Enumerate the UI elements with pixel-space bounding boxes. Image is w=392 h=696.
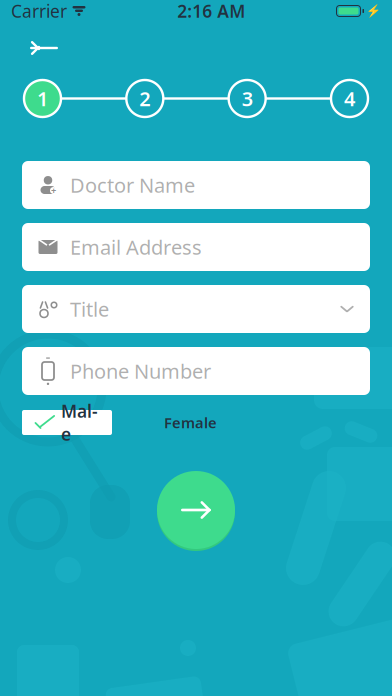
button[interactable]: Back [15, 30, 73, 66]
staticText: 2:16 AM [177, 0, 245, 22]
staticText: + [51, 184, 56, 197]
staticText: Title [70, 296, 109, 322]
staticText: Phone Number [70, 358, 211, 384]
staticText: Male [61, 399, 98, 445]
staticText: 1 [37, 85, 48, 112]
button[interactable]: Female [150, 410, 231, 435]
staticText: Carrier [11, 0, 67, 22]
button[interactable]: Phone Number [22, 347, 370, 395]
button[interactable]: + [22, 161, 370, 209]
staticText: 3 [242, 85, 253, 112]
button[interactable]: Email Address [22, 223, 370, 271]
staticText: 2 [139, 85, 150, 112]
staticText: Email Address [70, 234, 202, 260]
staticText: Female [164, 413, 217, 432]
staticText: Doctor Name [70, 172, 195, 198]
button[interactable]: Male [22, 410, 112, 435]
staticText: ⚡ [366, 4, 381, 18]
staticText: 4 [344, 85, 355, 112]
button[interactable]: Next [155, 469, 237, 551]
button[interactable]: Title [22, 285, 370, 333]
